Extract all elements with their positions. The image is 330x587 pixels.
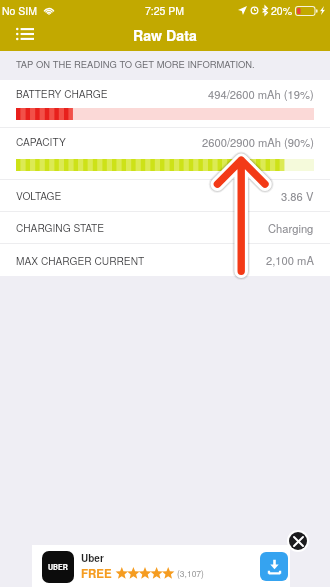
button[interactable]: UBER (32, 545, 290, 587)
staticText: 494/2600 mAh (19%) (208, 86, 314, 102)
staticText: (3,107) (177, 567, 204, 579)
staticText: BATTERY CHARGE (16, 86, 108, 101)
staticText: Charging (268, 220, 314, 236)
button[interactable]: VOLTAGE (0, 180, 330, 211)
staticText: FREE (81, 565, 112, 581)
staticText: 7:25 PM (145, 3, 185, 18)
staticText: MAX CHARGER CURRENT (16, 253, 145, 268)
button[interactable]: CAPACITY (0, 128, 330, 179)
button[interactable]: BATTERY CHARGE (0, 80, 330, 127)
staticText: 2600/2900 mAh (90%) (202, 134, 314, 150)
button[interactable]: Menu (8, 21, 42, 47)
staticText: Uber (81, 551, 104, 565)
staticText: UBER (48, 562, 68, 572)
staticText: TAP ON THE READING TO GET MORE INFORMATI… (16, 57, 255, 70)
button[interactable]: MAX CHARGER CURRENT (0, 244, 330, 276)
staticText: CHARGING STATE (16, 220, 105, 235)
staticText: 20% (271, 3, 293, 18)
button[interactable]: CHARGING STATE (0, 212, 330, 243)
button[interactable]: Close ad (287, 530, 309, 552)
staticText: CAPACITY (16, 134, 66, 149)
staticText: No SIM (2, 3, 38, 18)
staticText: 3.86 V (281, 188, 314, 204)
staticText: VOLTAGE (16, 188, 62, 203)
button[interactable]: Download (260, 552, 288, 581)
staticText: Raw Data (133, 25, 197, 45)
staticText: 2,100 mA (266, 252, 314, 268)
